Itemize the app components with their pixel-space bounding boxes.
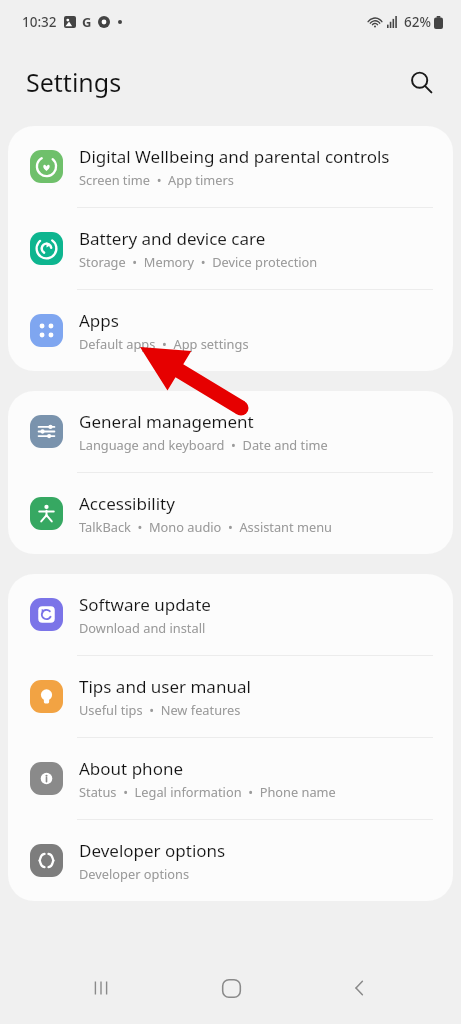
staticText: Developer options	[79, 839, 226, 862]
staticText: Language and keyboard • Date and time	[79, 436, 328, 453]
button[interactable]: Battery and device care	[8, 208, 453, 289]
staticText: 10:32	[22, 13, 57, 31]
staticText: Accessibility	[79, 492, 175, 515]
staticText: Tips and user manual	[79, 675, 251, 698]
staticText: Screen time • App timers	[79, 171, 234, 188]
button[interactable]: Search	[399, 60, 443, 104]
staticText: Battery and device care	[79, 227, 266, 250]
button[interactable]: Developer options	[8, 820, 453, 901]
button[interactable]: Back	[332, 960, 388, 1016]
staticText: Digital Wellbeing and parental controls	[79, 145, 390, 168]
staticText: Status • Legal information • Phone name	[79, 783, 336, 800]
button[interactable]: Digital Wellbeing and parental controls	[8, 126, 453, 207]
button[interactable]: Recents	[73, 960, 129, 1016]
button[interactable]: Software update	[8, 574, 453, 655]
staticText: Apps	[79, 309, 119, 332]
staticText: Developer options	[79, 865, 190, 882]
staticText: TalkBack • Mono audio • Assistant menu	[79, 518, 332, 535]
button[interactable]: About phone	[8, 738, 453, 819]
staticText: Download and install	[79, 619, 206, 636]
button[interactable]: General management	[8, 391, 453, 472]
button[interactable]: Home	[203, 960, 259, 1016]
staticText: About phone	[79, 757, 184, 780]
staticText: General management	[79, 410, 254, 433]
staticText: 62%	[404, 13, 431, 31]
staticText: Software update	[79, 593, 211, 616]
staticText: G	[82, 13, 92, 31]
staticText: Storage • Memory • Device protection	[79, 253, 318, 270]
staticText: Useful tips • New features	[79, 701, 241, 718]
button[interactable]: Tips and user manual	[8, 656, 453, 737]
staticText: Settings	[26, 65, 122, 99]
button[interactable]: Accessibility	[8, 473, 453, 554]
button[interactable]: Apps	[8, 290, 453, 371]
staticText: Default apps • App settings	[79, 335, 249, 352]
